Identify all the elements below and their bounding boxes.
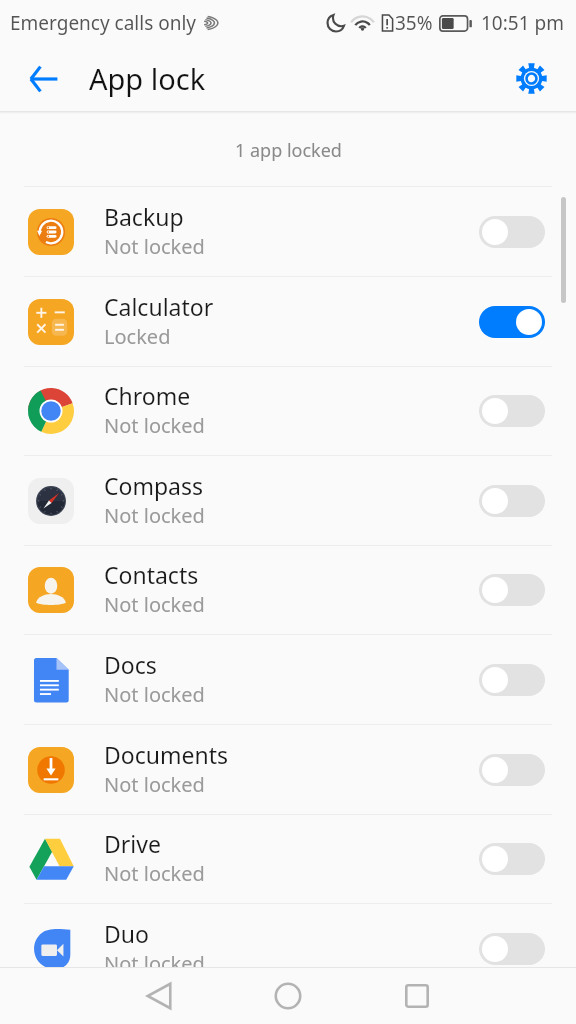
button[interactable]: Toggle lock [479, 754, 545, 786]
button[interactable]: Documents [0, 725, 576, 814]
staticText: Not locked [104, 591, 205, 618]
staticText: 10:51 pm [481, 10, 564, 36]
staticText: Not locked [104, 681, 205, 708]
button[interactable]: Home [244, 970, 332, 1022]
staticText: Not locked [104, 860, 205, 887]
staticText: App lock [89, 59, 206, 98]
staticText: Contacts [104, 559, 199, 590]
button[interactable]: Toggle lock [479, 664, 545, 696]
staticText: Not locked [104, 950, 205, 967]
staticText: Calculator [104, 291, 214, 322]
button[interactable]: Toggle lock [479, 306, 545, 338]
button[interactable]: Toggle lock [479, 933, 545, 965]
button[interactable]: Chrome [0, 367, 576, 455]
button[interactable]: Settings [498, 46, 564, 111]
staticText: Locked [104, 323, 171, 350]
staticText: Docs [104, 649, 157, 680]
button[interactable]: Backup [0, 187, 576, 276]
staticText: Emergency calls only [10, 10, 197, 36]
staticText: Not locked [104, 502, 205, 529]
button[interactable]: Compass [0, 456, 576, 545]
staticText: Not locked [104, 233, 205, 260]
button[interactable]: Toggle lock [479, 485, 545, 517]
staticText: Drive [104, 828, 161, 859]
staticText: Documents [104, 739, 228, 770]
button[interactable]: Back [115, 970, 203, 1022]
button[interactable]: Docs [0, 635, 576, 724]
staticText: Duo [104, 918, 149, 949]
staticText: 1 app locked [235, 138, 342, 163]
button[interactable]: Duo [0, 904, 576, 967]
button[interactable]: Toggle lock [479, 574, 545, 606]
staticText: 35% [395, 10, 433, 36]
button[interactable]: Toggle lock [479, 843, 545, 875]
staticText: Compass [104, 470, 204, 501]
staticText: Chrome [104, 380, 191, 411]
button[interactable]: Toggle lock [479, 216, 545, 248]
button[interactable]: Contacts [0, 546, 576, 634]
staticText: Not locked [104, 412, 205, 439]
button[interactable]: Toggle lock [479, 395, 545, 427]
button[interactable]: Drive [0, 815, 576, 903]
button[interactable]: Calculator [0, 277, 576, 366]
staticText: Not locked [104, 771, 205, 798]
staticText: Backup [104, 201, 184, 232]
button[interactable]: Back [11, 46, 77, 111]
button[interactable]: Recents [373, 970, 461, 1022]
